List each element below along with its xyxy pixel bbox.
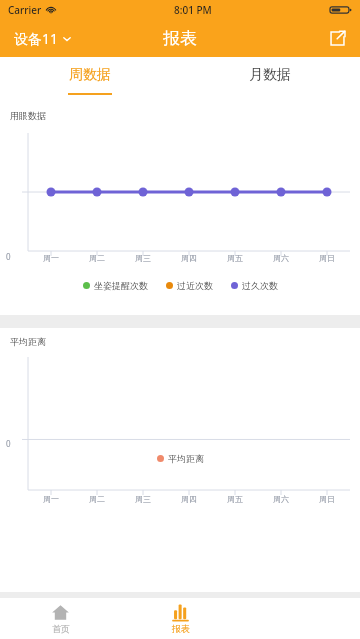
staticText: 周三 [135, 253, 151, 263]
staticText: 周一 [43, 494, 59, 504]
staticText: 周日 [319, 253, 335, 263]
button[interactable]: 过久次数 [231, 280, 278, 291]
staticText: 平均距离 [10, 336, 46, 347]
staticText: 月数据 [249, 66, 291, 84]
staticText: 用眼数据 [10, 110, 46, 121]
staticText: 周六 [273, 253, 289, 263]
staticText: Carrier [8, 3, 42, 17]
staticText: 周五 [227, 494, 243, 504]
staticText: 周三 [135, 494, 151, 504]
button[interactable]: 过近次数 [166, 280, 213, 291]
staticText: 报表 [172, 623, 190, 634]
button[interactable]: 报表 [120, 598, 240, 639]
staticText: 周四 [181, 253, 197, 263]
staticText: 0 [6, 251, 11, 262]
staticText: 周四 [181, 494, 197, 504]
button[interactable]: 平均距离 [157, 453, 204, 464]
staticText: 设备11 [14, 29, 59, 48]
staticText: 首页 [52, 623, 70, 634]
staticText: 报表 [163, 28, 197, 49]
staticText: 周一 [43, 253, 59, 263]
staticText: 平均距离 [168, 453, 204, 464]
staticText: 坐姿提醒次数 [94, 280, 148, 291]
button[interactable]: 周数据 [0, 57, 180, 104]
button[interactable]: 坐姿提醒次数 [83, 280, 148, 291]
button[interactable]: 设备11 [0, 23, 82, 54]
staticText: 周二 [89, 253, 105, 263]
button[interactable]: 首页 [0, 598, 120, 639]
button[interactable]: Share [315, 22, 360, 55]
staticText: 周六 [273, 494, 289, 504]
staticText: 0 [6, 438, 11, 449]
staticText: 周日 [319, 494, 335, 504]
staticText: 周二 [89, 494, 105, 504]
staticText: 过久次数 [242, 280, 278, 291]
staticText: 周数据 [69, 66, 111, 84]
staticText: 周五 [227, 253, 243, 263]
staticText: 8:01 PM [174, 3, 212, 17]
staticText: 过近次数 [177, 280, 213, 291]
button[interactable]: 月数据 [180, 57, 360, 104]
